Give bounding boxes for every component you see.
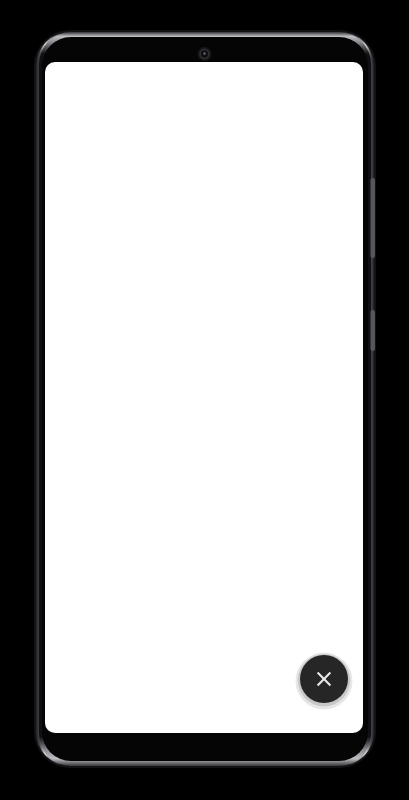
button[interactable]: Close	[300, 655, 348, 703]
button[interactable]: Volume	[368, 178, 376, 258]
button[interactable]: Power	[368, 310, 376, 351]
